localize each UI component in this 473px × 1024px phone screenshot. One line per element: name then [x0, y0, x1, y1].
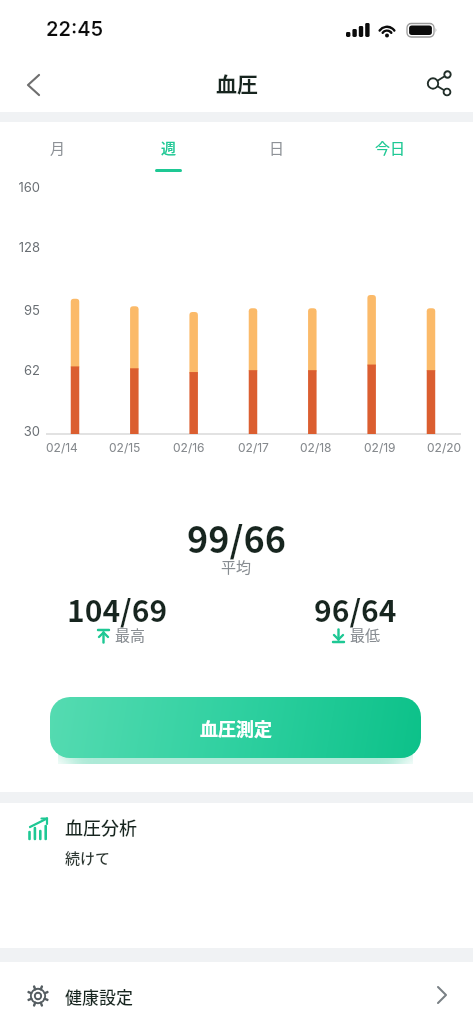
- staticText: 血圧分析: [65, 814, 137, 840]
- staticText: 30: [23, 423, 40, 439]
- staticText: 02/17: [238, 440, 269, 455]
- staticText: 今日: [375, 137, 406, 159]
- staticText: 月: [50, 137, 66, 159]
- staticText: 95: [24, 302, 40, 318]
- staticText: 平均: [221, 556, 252, 578]
- staticText: 160: [18, 179, 40, 195]
- staticText: 22:45: [46, 17, 104, 41]
- button[interactable]: [416, 64, 456, 104]
- staticText: 99/66: [187, 511, 286, 563]
- staticText: 96/64: [314, 587, 397, 630]
- staticText: 02/19: [364, 440, 396, 455]
- button[interactable]: 日: [247, 137, 307, 175]
- staticText: 続けて: [65, 847, 111, 869]
- staticText: 02/20: [427, 440, 462, 455]
- staticText: 最低: [350, 624, 381, 646]
- staticText: 62: [24, 362, 40, 378]
- button[interactable]: 週: [138, 137, 198, 181]
- staticText: 02/14: [46, 440, 78, 455]
- staticText: 128: [18, 239, 40, 255]
- staticText: 血圧測定: [200, 715, 272, 741]
- staticText: 02/18: [300, 440, 332, 455]
- button[interactable]: 健康設定: [0, 962, 473, 1024]
- staticText: 日: [269, 137, 285, 159]
- staticText: 健康設定: [65, 984, 133, 1009]
- staticText: 週: [161, 137, 177, 159]
- button[interactable]: 血圧分析: [0, 803, 473, 948]
- staticText: 血圧: [216, 68, 258, 98]
- button[interactable]: 今日: [358, 137, 422, 175]
- staticText: 02/15: [109, 440, 141, 455]
- staticText: 02/16: [173, 440, 205, 455]
- button[interactable]: [14, 66, 52, 104]
- staticText: 104/69: [67, 587, 168, 630]
- button[interactable]: 血圧測定: [50, 697, 421, 758]
- button[interactable]: 月: [28, 137, 88, 175]
- staticText: 最高: [115, 624, 146, 646]
